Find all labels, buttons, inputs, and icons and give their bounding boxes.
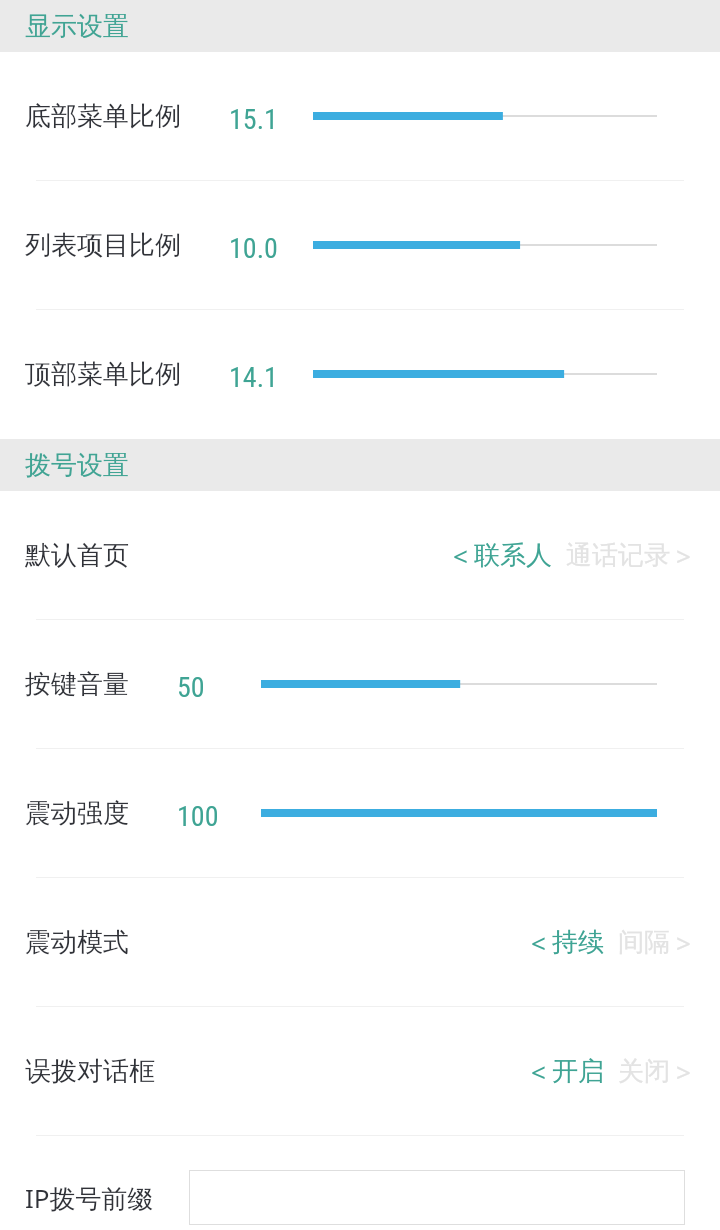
staticText: 列表项目比例 [25, 229, 181, 262]
staticText: 联系人 [474, 539, 552, 572]
staticText: 通话记录 [566, 539, 670, 572]
button[interactable]: 误拨对话框 [0, 1007, 720, 1136]
staticText: 底部菜单比例 [25, 100, 181, 133]
button[interactable]: 默认首页 [0, 491, 720, 620]
button[interactable]: 按键音量 [0, 620, 720, 749]
staticText: > [676, 1054, 691, 1089]
staticText: 持续 [552, 926, 604, 959]
button[interactable]: 震动模式 [0, 878, 720, 1007]
staticText: < [531, 1054, 546, 1089]
staticText: 开启 [552, 1055, 604, 1088]
staticText: 震动模式 [25, 926, 129, 959]
staticText: 14.1 [229, 361, 278, 394]
staticText: > [676, 538, 691, 573]
staticText: > [676, 925, 691, 960]
staticText: 间隔 [618, 926, 670, 959]
staticText: 震动强度 [25, 797, 129, 830]
staticText: 100 [177, 800, 219, 833]
staticText: < [453, 538, 468, 573]
button[interactable]: 底部菜单比例 [0, 52, 720, 181]
staticText: 显示设置 [25, 10, 129, 43]
staticText: IP拨号前缀 [25, 1180, 154, 1216]
staticText: 关闭 [618, 1055, 670, 1088]
staticText: 15.1 [229, 103, 278, 136]
staticText: 默认首页 [25, 539, 129, 572]
staticText: 拨号设置 [25, 449, 129, 482]
button[interactable] [189, 1170, 685, 1225]
button[interactable]: 列表项目比例 [0, 181, 720, 310]
staticText: 10.0 [229, 232, 278, 265]
button[interactable]: 震动强度 [0, 749, 720, 878]
staticText: 50 [177, 671, 205, 704]
staticText: < [531, 925, 546, 960]
staticText: 按键音量 [25, 668, 129, 701]
staticText: 顶部菜单比例 [25, 358, 181, 391]
staticText: 误拨对话框 [25, 1055, 155, 1088]
button[interactable]: 顶部菜单比例 [0, 310, 720, 439]
